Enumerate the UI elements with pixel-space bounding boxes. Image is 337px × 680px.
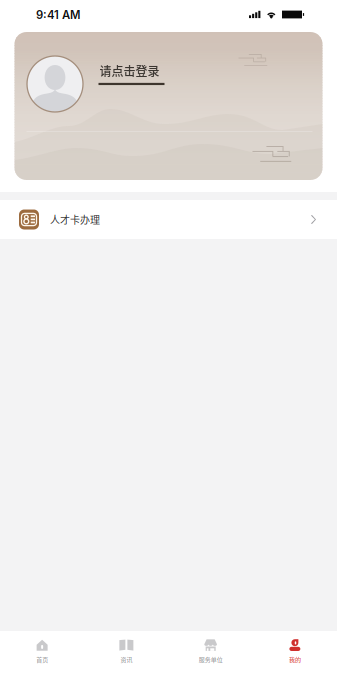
staticText: 人才卡办理: [50, 212, 100, 227]
button[interactable]: 我的: [253, 631, 337, 680]
button[interactable]: 人才卡办理: [0, 200, 337, 239]
button[interactable]: 资讯: [84, 631, 168, 680]
button[interactable]: 首页: [0, 631, 84, 680]
staticText: 服务单位: [199, 655, 223, 664]
staticText: 资讯: [120, 655, 132, 664]
staticText: 我的: [289, 655, 301, 664]
staticText: 首页: [36, 655, 48, 664]
staticText: 9:41 AM: [36, 8, 80, 22]
staticText: 请点击登录: [99, 62, 159, 79]
button[interactable]: 请点击登录: [14, 32, 322, 180]
button[interactable]: 服务单位: [168, 631, 253, 680]
